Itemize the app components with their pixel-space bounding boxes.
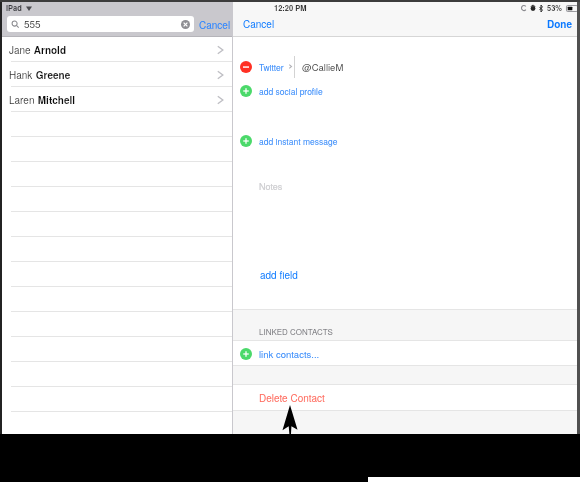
button[interactable]: Add	[233, 82, 577, 100]
staticText: Delete Contact	[259, 391, 325, 405]
staticText: @CallieM	[302, 60, 344, 74]
button[interactable]: Cancel	[197, 16, 233, 34]
button[interactable]: Remove Twitter	[233, 54, 577, 79]
staticText: Jane	[9, 43, 31, 57]
staticText: Mitchell	[35, 93, 76, 107]
button[interactable]: 555	[7, 16, 194, 32]
staticText: Twitter	[259, 61, 284, 73]
staticText: Laren	[9, 93, 35, 107]
button[interactable]: Add	[233, 345, 577, 363]
staticText: Notes	[259, 180, 283, 193]
button[interactable]: add field	[258, 265, 300, 285]
staticText: add instant message	[259, 135, 338, 147]
button[interactable]: Jane	[2, 37, 232, 62]
staticText: Hank	[9, 68, 33, 82]
staticText: Cancel	[199, 18, 231, 32]
staticText: add field	[260, 268, 298, 282]
button[interactable]: Hank	[2, 62, 232, 87]
button[interactable]: Delete Contact	[233, 389, 577, 407]
staticText: Greene	[33, 68, 71, 82]
staticText: Done	[547, 17, 572, 31]
button[interactable]: Done	[545, 15, 574, 33]
button[interactable]: Laren	[2, 87, 232, 112]
other: Add	[240, 135, 252, 147]
staticText: 555	[24, 17, 41, 31]
staticText: link contacts...	[259, 347, 320, 361]
other: Clear search	[181, 20, 190, 29]
staticText: Arnold	[31, 43, 66, 57]
staticText: 12:20 PM	[274, 3, 307, 14]
staticText: add social profile	[259, 85, 323, 97]
staticText: iPad	[6, 3, 22, 13]
staticText: 53%	[547, 3, 563, 13]
button[interactable]: Cancel	[241, 15, 277, 33]
staticText: LINKED CONTACTS	[259, 326, 333, 337]
other: Add	[240, 348, 252, 360]
other: Pointer	[282, 405, 298, 434]
other: Remove Twitter	[240, 61, 252, 73]
staticText: Cancel	[243, 17, 275, 31]
button[interactable]: Add	[233, 132, 577, 150]
other: Add	[240, 85, 252, 97]
